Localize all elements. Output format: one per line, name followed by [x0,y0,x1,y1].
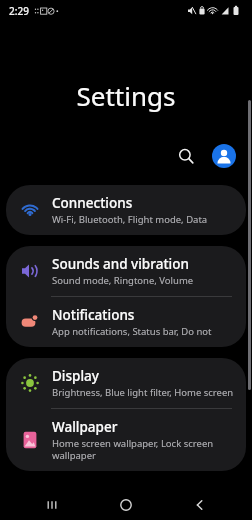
staticText: Sounds and vibration [52,255,189,273]
staticText: Display [52,367,99,385]
button[interactable]: Home [104,490,148,520]
button[interactable]: Connections [6,185,246,235]
button[interactable]: Notifications [6,297,246,347]
staticText: App notifications, Status bar, Do not di… [52,325,234,338]
staticText: Home screen wallpaper, Lock screen wallp… [52,437,234,462]
button[interactable]: Back [178,490,222,520]
button[interactable]: Recents [30,490,74,520]
button[interactable]: Search [169,139,203,173]
staticText: Notifications [52,306,135,324]
staticText: Brightness, Blue light filter, Home scre… [52,386,234,399]
staticText: Wi-Fi, Bluetooth, Flight mode, Data usag… [52,213,234,226]
staticText: Settings [0,78,252,113]
button[interactable]: Wallpaper [6,409,246,471]
staticText: 2:29 [9,4,29,18]
staticText: Sound mode, Ringtone, Volume [52,274,194,287]
staticText: Connections [52,194,133,212]
staticText: Wallpaper [52,418,118,436]
button[interactable]: Display [6,358,246,408]
button[interactable]: Account [207,139,241,173]
button[interactable]: Sounds and vibration [6,246,246,296]
